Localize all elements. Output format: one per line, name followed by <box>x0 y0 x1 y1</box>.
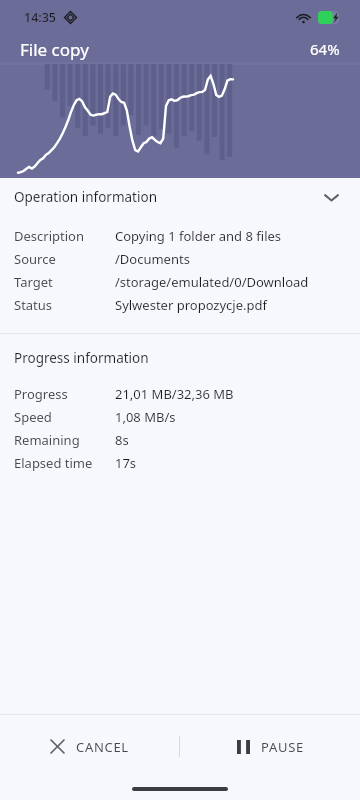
staticText: Description <box>14 227 84 245</box>
staticText: PAUSE <box>261 738 304 756</box>
button[interactable]: PAUSE <box>180 715 360 778</box>
staticText: 8s <box>115 431 129 449</box>
staticText: 1,08 MB/s <box>115 408 176 426</box>
staticText: /Documents <box>115 250 190 268</box>
staticText: Remaining <box>14 431 80 449</box>
staticText: Operation information <box>14 188 157 206</box>
staticText: Elapsed time <box>14 454 93 472</box>
staticText: 64% <box>310 39 340 59</box>
button[interactable]: Operation information <box>0 178 360 216</box>
staticText: Copying 1 folder and 8 files <box>115 227 282 245</box>
staticText: Status <box>14 296 53 314</box>
staticText: Progress information <box>14 349 149 367</box>
staticText: Sylwester propozycje.pdf <box>115 296 267 314</box>
staticText: 21,01 MB/32,36 MB <box>115 385 234 403</box>
staticText: Source <box>14 250 56 268</box>
staticText: Target <box>14 273 53 291</box>
button[interactable]: CANCEL <box>0 715 179 778</box>
staticText: 17s <box>115 454 137 472</box>
staticText: /storage/emulated/0/Download <box>115 273 309 291</box>
staticText: Progress <box>14 385 68 403</box>
staticText: File copy <box>20 38 89 61</box>
staticText: 14:35 <box>24 9 57 26</box>
other: Collapse operation information <box>318 184 344 210</box>
staticText: Speed <box>14 408 52 426</box>
staticText: CANCEL <box>76 738 129 756</box>
